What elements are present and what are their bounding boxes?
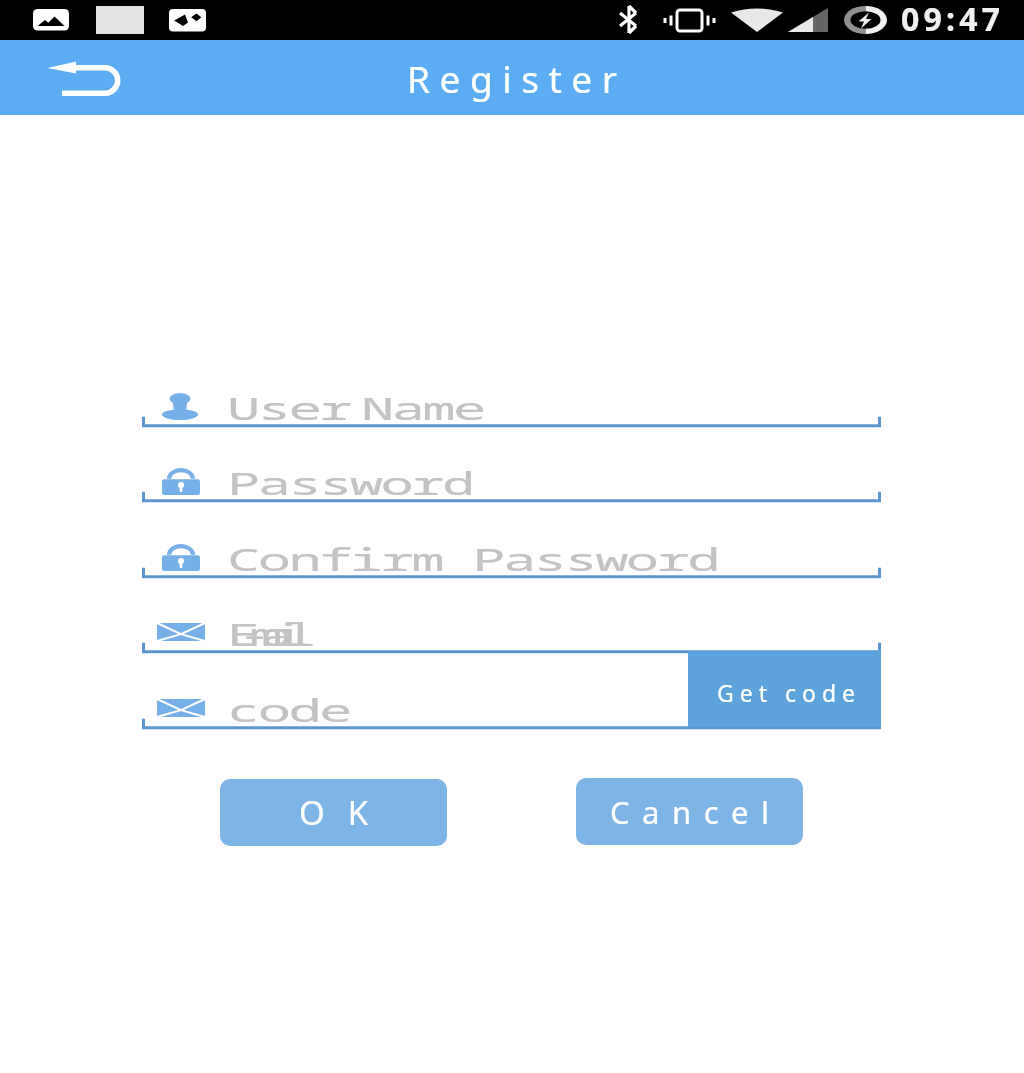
staticText: User Name bbox=[227, 388, 484, 429]
staticText: 09:47 bbox=[901, 0, 1005, 37]
staticText: E-mail bbox=[227, 614, 294, 655]
button[interactable]: E-mail bbox=[142, 603, 881, 661]
button[interactable]: Back bbox=[0, 40, 110, 115]
button[interactable]: OK bbox=[220, 779, 447, 846]
staticText: Get code bbox=[717, 677, 862, 708]
button[interactable]: Cancel bbox=[576, 778, 803, 845]
button[interactable]: Confirm Password bbox=[142, 528, 881, 586]
staticText: OK bbox=[299, 790, 392, 835]
staticText: code bbox=[227, 690, 351, 731]
staticText: Register bbox=[407, 53, 627, 103]
staticText: Password bbox=[227, 463, 473, 504]
staticText: Cancel bbox=[610, 791, 782, 833]
staticText: Confirm Password bbox=[227, 539, 719, 580]
button[interactable]: User Name bbox=[142, 377, 881, 435]
button[interactable]: Get code bbox=[688, 651, 881, 727]
button[interactable]: code bbox=[142, 679, 881, 737]
button[interactable]: Password bbox=[142, 452, 881, 510]
